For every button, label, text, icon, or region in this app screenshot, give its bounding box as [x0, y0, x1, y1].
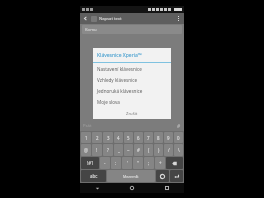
button[interactable]: _ — [114, 144, 123, 156]
button[interactable]: Nastavení klávesnice — [93, 63, 171, 74]
button[interactable]: Enter — [170, 170, 183, 182]
staticText: 6 — [137, 135, 140, 141]
button[interactable]: / — [164, 144, 173, 156]
staticText: Nastavení klávesnice — [97, 66, 142, 72]
staticText: ( — [148, 147, 150, 153]
button[interactable]: 1 — [81, 132, 91, 143]
staticText: Komu — [85, 27, 97, 33]
button[interactable]: Komu — [82, 25, 182, 34]
staticText: ; — [148, 160, 150, 166]
button[interactable]: 3 — [103, 132, 113, 143]
button[interactable]: @ — [81, 144, 91, 156]
button[interactable]: ~ — [124, 144, 133, 156]
button[interactable]: 0 — [174, 132, 183, 143]
staticText: Klávesnice Xperia™ — [97, 52, 142, 59]
button[interactable]: Back — [80, 183, 114, 193]
staticText: ' — [127, 160, 128, 166]
staticText: 0 — [177, 135, 180, 141]
staticText: 7 — [147, 135, 150, 141]
button[interactable]: Back — [80, 13, 91, 24]
button[interactable]: 7 — [144, 132, 153, 143]
staticText: 3 — [107, 135, 110, 141]
button[interactable]: ? — [103, 144, 113, 156]
staticText: Vzhledy klávesnice — [97, 77, 138, 83]
staticText: + — [159, 160, 162, 166]
button[interactable]: Vzhledy klávesnice — [93, 74, 171, 85]
staticText: 4 — [117, 135, 120, 141]
button[interactable]: More options — [173, 13, 184, 24]
staticText: Jednoruká klávesnice — [97, 88, 143, 94]
button[interactable]: Recents — [149, 183, 184, 193]
button[interactable]: 9 — [164, 132, 173, 143]
staticText: ? — [107, 147, 109, 153]
staticText: _ — [118, 147, 120, 153]
button[interactable]: Backspace — [166, 157, 183, 169]
staticText: # — [137, 147, 140, 153]
button[interactable]: ' — [122, 157, 132, 169]
staticText: 9 — [167, 135, 170, 141]
button[interactable]: + — [155, 157, 165, 169]
button[interactable]: !#1 — [81, 157, 99, 169]
button[interactable]: # — [134, 144, 143, 156]
button[interactable]: 5 — [124, 132, 133, 143]
staticText: ! — [96, 147, 98, 153]
staticText: Mezerník — [123, 174, 139, 179]
staticText: / — [168, 147, 170, 153]
staticText: 5 — [127, 135, 130, 141]
staticText: : — [115, 160, 117, 166]
staticText: \ — [178, 147, 180, 153]
button[interactable]: " — [133, 157, 143, 169]
staticText: 1 — [85, 135, 88, 141]
staticText: Zrušit — [126, 111, 138, 117]
button[interactable]: 2 — [92, 132, 102, 143]
button[interactable]: Home — [114, 183, 149, 193]
staticText: !#1 — [87, 160, 94, 166]
button[interactable]: 6 — [134, 132, 143, 143]
button[interactable]: Zrušit — [93, 109, 171, 119]
staticText: 2 — [96, 135, 99, 141]
staticText: # — [177, 123, 181, 130]
button[interactable]: ! — [92, 144, 102, 156]
button[interactable]: ; — [144, 157, 154, 169]
staticText: abc — [90, 173, 98, 179]
staticText: - — [104, 160, 106, 166]
button[interactable]: abc — [81, 170, 106, 182]
staticText: Napsat text — [99, 16, 122, 22]
button[interactable]: Moje slova — [93, 96, 171, 107]
button[interactable]: Jednoruká klávesnice — [93, 85, 171, 96]
staticText: @ — [84, 147, 88, 153]
button[interactable]: Emoji — [156, 170, 169, 182]
button[interactable]: ( — [144, 144, 153, 156]
staticText: ) — [158, 147, 160, 153]
button[interactable]: 4 — [114, 132, 123, 143]
button[interactable]: - — [100, 157, 110, 169]
staticText: ~ — [127, 147, 130, 153]
staticText: 8 — [157, 135, 160, 141]
button[interactable]: ) — [154, 144, 163, 156]
button[interactable]: Mezerník — [107, 170, 155, 182]
button[interactable]: : — [111, 157, 121, 169]
staticText: Moje slova — [97, 99, 120, 105]
button[interactable]: 8 — [154, 132, 163, 143]
staticText: " — [137, 160, 139, 166]
staticText: Psát — [83, 123, 92, 129]
button[interactable]: \ — [174, 144, 183, 156]
